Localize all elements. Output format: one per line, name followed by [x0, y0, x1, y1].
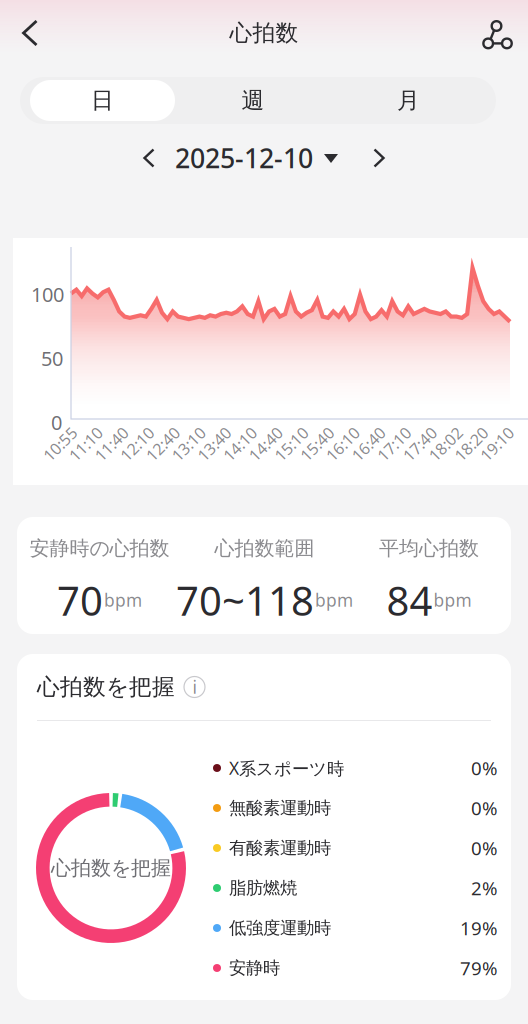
staticText: 84	[386, 574, 432, 627]
staticText: 17:10	[374, 433, 414, 455]
staticText: 週	[241, 87, 264, 114]
staticText: 15:40	[297, 433, 337, 455]
button[interactable]: 週	[175, 80, 331, 121]
staticText: 心拍数を把握	[51, 856, 171, 880]
staticText: 安静時の心拍数	[29, 536, 169, 561]
staticText: bpm	[315, 589, 353, 612]
staticText: 心拍数を把握	[37, 673, 175, 701]
staticText: 14:40	[246, 433, 286, 455]
staticText: 平均心拍数	[379, 536, 479, 561]
staticText: 18:20	[451, 433, 491, 455]
staticText: 月	[397, 87, 420, 114]
button[interactable]: Share	[468, 4, 528, 62]
staticText: 心拍数	[229, 19, 298, 47]
staticText: 2%	[471, 876, 498, 900]
staticText: 18:02	[425, 433, 465, 455]
staticText: 日	[91, 87, 114, 114]
staticText: 0%	[471, 796, 498, 820]
button[interactable]: Back	[0, 4, 60, 62]
staticText: 16:40	[348, 433, 388, 455]
staticText: 11:10	[66, 433, 106, 455]
staticText: 17:40	[400, 433, 440, 455]
staticText: 16:10	[323, 433, 363, 455]
staticText: 13:10	[168, 433, 208, 455]
staticText: 10:55	[40, 433, 80, 455]
staticText: 2025-12-10	[175, 140, 313, 176]
staticText: 12:40	[143, 433, 183, 455]
staticText: 脂肪燃焼	[229, 877, 297, 899]
staticText: 50	[41, 345, 63, 372]
button[interactable]: Choose date	[313, 138, 353, 178]
button[interactable]: 日	[30, 80, 175, 121]
staticText: bpm	[104, 589, 142, 612]
staticText: 心拍数範囲	[214, 536, 314, 561]
staticText: 12:10	[117, 433, 157, 455]
staticText: X系スポーツ時	[229, 756, 344, 779]
staticText: 19:10	[477, 433, 517, 455]
button[interactable]: Next day	[353, 138, 405, 178]
staticText: 14:10	[220, 433, 260, 455]
staticText: 低強度運動時	[229, 917, 331, 939]
staticText: 安静時	[229, 957, 280, 979]
staticText: 100	[31, 281, 64, 308]
staticText: 79%	[460, 956, 498, 980]
staticText: 19%	[460, 916, 498, 940]
staticText: 有酸素運動時	[229, 837, 331, 859]
staticText: 13:40	[194, 433, 234, 455]
staticText: 70~118	[176, 574, 314, 627]
staticText: 11:40	[91, 433, 131, 455]
staticText: 15:10	[271, 433, 311, 455]
staticText: 70	[57, 574, 103, 627]
button[interactable]: Info	[184, 676, 205, 697]
staticText: i	[192, 675, 196, 698]
button[interactable]: 月	[331, 80, 486, 121]
staticText: bpm	[433, 589, 471, 612]
staticText: 無酸素運動時	[229, 797, 331, 819]
button[interactable]: Previous day	[123, 138, 175, 178]
staticText: 0%	[471, 836, 498, 860]
staticText: 0%	[471, 756, 498, 780]
staticText: 0	[51, 409, 62, 436]
